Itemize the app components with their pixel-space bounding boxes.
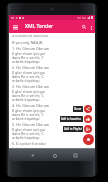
button[interactable]: More options bbox=[88, 24, 95, 31]
staticText: 6. It a place fun also Let us see cons bbox=[12, 141, 51, 148]
button[interactable]: Open navigation menu bbox=[11, 23, 19, 31]
button[interactable]: Search bbox=[80, 23, 88, 31]
button[interactable]: Home bbox=[50, 151, 59, 160]
staticText: If you only NAA JB bbox=[12, 40, 43, 45]
staticText: 5. Hic Glorum Obe aw Il glor chum ipti g… bbox=[12, 122, 51, 140]
button[interactable]: Share bbox=[74, 107, 82, 111]
staticText: ut ut veniam nisi nostrud exer bbox=[12, 34, 49, 38]
button[interactable]: Back bbox=[28, 151, 37, 160]
button[interactable]: Share bbox=[84, 105, 92, 113]
staticText: XML Tender bbox=[25, 23, 54, 30]
staticText: 2. Hic Glorum Obe aw Il glor chum ipti g… bbox=[12, 65, 51, 83]
button[interactable]: Recent apps bbox=[71, 151, 80, 160]
button[interactable]: Close actions bbox=[83, 134, 94, 145]
staticText: 3. Hic Glorum Obe aw Il glor chum ipti g… bbox=[12, 84, 51, 102]
staticText: Add to favorites bbox=[61, 117, 82, 121]
button[interactable]: Add to favorites bbox=[84, 115, 92, 123]
button[interactable]: Add to Playlist bbox=[84, 125, 92, 133]
staticText: Add to Playlist bbox=[64, 127, 82, 131]
staticText: 4. Hic Glorum Obe aw Il glor chum ipti g… bbox=[12, 103, 51, 121]
staticText: 1. Hic Glorum Obe aw Il glor chum ipti g… bbox=[12, 46, 51, 64]
staticText: Share bbox=[74, 107, 82, 111]
button[interactable]: Add to favorites bbox=[61, 117, 82, 121]
button[interactable]: Add to Playlist bbox=[64, 127, 82, 131]
